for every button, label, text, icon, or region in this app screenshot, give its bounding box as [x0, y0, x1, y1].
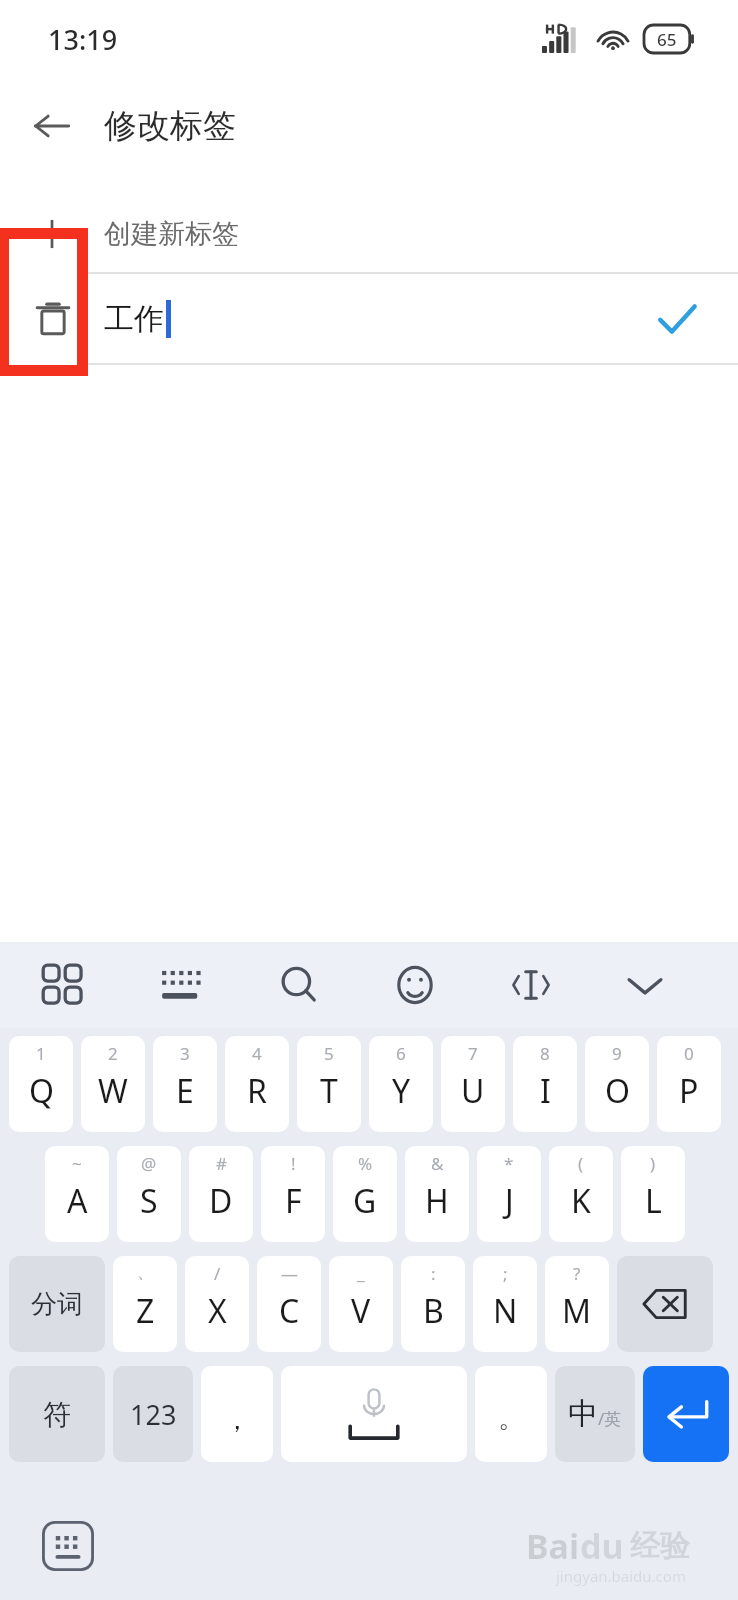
button[interactable]: Delete label [22, 288, 84, 350]
staticText: 中 [568, 1395, 598, 1433]
staticText: : [431, 1262, 436, 1285]
staticText: N [493, 1289, 518, 1333]
button[interactable]: 2 [81, 1036, 145, 1132]
staticText: 6 [396, 1042, 406, 1065]
button[interactable]: Space [281, 1366, 467, 1462]
button[interactable]: # [189, 1146, 253, 1242]
button[interactable]: Confirm [646, 288, 708, 350]
button[interactable]: 1 [9, 1036, 73, 1132]
button[interactable]: ( [549, 1146, 613, 1242]
button[interactable]: @ [117, 1146, 181, 1242]
button[interactable]: 6 [369, 1036, 433, 1132]
button[interactable]: Keyboard [138, 942, 224, 1028]
button[interactable]: Backspace [617, 1256, 713, 1352]
button[interactable]: Keyboard layouts [20, 942, 106, 1028]
staticText: ) [650, 1152, 656, 1175]
button[interactable]: % [333, 1146, 397, 1242]
staticText: T [320, 1069, 338, 1113]
staticText: Y [392, 1069, 411, 1113]
staticText: M [562, 1289, 592, 1333]
staticText: 7 [468, 1042, 478, 1065]
staticText: 2 [108, 1042, 118, 1065]
staticText: H [425, 1179, 449, 1223]
staticText: 65 [657, 28, 677, 51]
button[interactable]: 中 [555, 1366, 635, 1462]
button[interactable]: — [257, 1256, 321, 1352]
button[interactable]: Enter [643, 1366, 729, 1462]
staticText: E [176, 1069, 194, 1113]
staticText: J [505, 1179, 514, 1223]
staticText: ~ [72, 1152, 82, 1175]
staticText: _ [357, 1262, 365, 1285]
staticText: 5 [324, 1042, 334, 1065]
button[interactable]: Emoji [372, 942, 458, 1028]
button[interactable]: ; [473, 1256, 537, 1352]
staticText: / [214, 1262, 221, 1285]
staticText: du [580, 1523, 624, 1569]
staticText: # [216, 1152, 227, 1175]
staticText: K [571, 1179, 591, 1223]
button[interactable]: * [477, 1146, 541, 1242]
staticText: 9 [612, 1042, 622, 1065]
staticText: W [98, 1069, 128, 1113]
staticText: R [247, 1069, 267, 1113]
button[interactable]: 8 [513, 1036, 577, 1132]
button[interactable]: ， [201, 1366, 273, 1462]
staticText: 、 [137, 1262, 154, 1283]
button[interactable]: Back [22, 96, 82, 156]
button[interactable]: 创建新标签 [0, 196, 738, 272]
staticText: Bai [526, 1523, 580, 1569]
staticText: 0 [684, 1042, 694, 1065]
button[interactable]: 分词 [9, 1256, 105, 1352]
button[interactable]: Switch keyboard [40, 1520, 96, 1572]
button[interactable]: 123 [113, 1366, 193, 1462]
staticText: U [461, 1069, 485, 1113]
staticText: ? [573, 1262, 581, 1285]
button[interactable]: 4 [225, 1036, 289, 1132]
staticText: G [353, 1179, 377, 1223]
button[interactable]: Hide keyboard [602, 942, 688, 1028]
staticText: 。 [498, 1402, 524, 1435]
staticText: % [358, 1152, 373, 1175]
button[interactable]: 9 [585, 1036, 649, 1132]
staticText: jingyan.baidu.com [556, 1566, 686, 1586]
staticText: 1 [36, 1042, 46, 1065]
staticText: — [281, 1262, 298, 1285]
button[interactable]: ? [545, 1256, 609, 1352]
button[interactable]: ~ [45, 1146, 109, 1242]
staticText: 123 [130, 1396, 177, 1433]
staticText: 修改标签 [104, 105, 236, 147]
staticText: 13:19 [48, 21, 118, 58]
button[interactable]: 5 [297, 1036, 361, 1132]
staticText: O [605, 1069, 630, 1113]
staticText: V [351, 1289, 371, 1333]
staticText: & [431, 1152, 444, 1175]
staticText: I [540, 1069, 551, 1113]
button[interactable]: Edit text [488, 942, 574, 1028]
button[interactable]: Search [256, 942, 342, 1028]
staticText: X [208, 1289, 227, 1333]
button[interactable]: : [401, 1256, 465, 1352]
staticText: C [279, 1289, 300, 1333]
staticText: P [679, 1069, 699, 1113]
button[interactable]: 符 [9, 1366, 105, 1462]
staticText: Q [29, 1069, 54, 1113]
button[interactable]: & [405, 1146, 469, 1242]
staticText: 分词 [31, 1288, 83, 1321]
button[interactable]: 3 [153, 1036, 217, 1132]
staticText: 3 [180, 1042, 190, 1065]
staticText: Z [136, 1289, 155, 1333]
staticText: ， [224, 1404, 250, 1437]
button[interactable]: ! [261, 1146, 325, 1242]
staticText: A [67, 1179, 88, 1223]
staticText: 4 [252, 1042, 262, 1065]
button[interactable]: / [185, 1256, 249, 1352]
button[interactable]: ) [621, 1146, 685, 1242]
staticText: @ [141, 1152, 157, 1175]
button[interactable]: 、 [113, 1256, 177, 1352]
button[interactable]: _ [329, 1256, 393, 1352]
staticText: S [140, 1179, 158, 1223]
button[interactable]: 7 [441, 1036, 505, 1132]
button[interactable]: 0 [657, 1036, 721, 1132]
button[interactable]: 。 [475, 1366, 547, 1462]
